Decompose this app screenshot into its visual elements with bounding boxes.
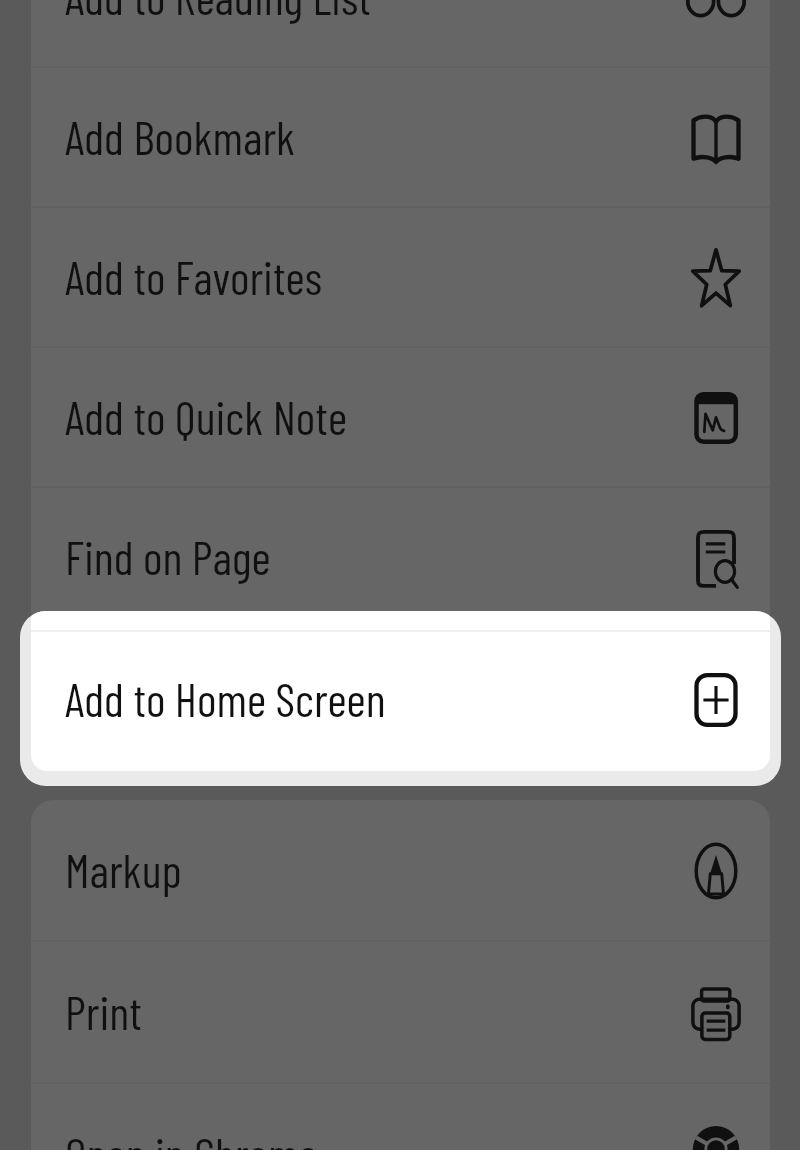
other: Add Bookmark <box>686 108 746 168</box>
staticText: Markup <box>65 841 182 897</box>
other: Add to Home Screen <box>686 668 746 728</box>
button[interactable]: Print <box>31 942 770 1084</box>
staticText: Print <box>65 983 142 1039</box>
other: Add to Quick Note <box>686 388 746 448</box>
other: Print <box>686 983 746 1043</box>
other: Find on Page <box>686 528 746 588</box>
other: Open in Chrome <box>686 1125 746 1150</box>
other: Add to Home Screen <box>686 670 746 730</box>
other: Markup <box>686 841 746 901</box>
button[interactable]: Add to Favorites <box>31 208 770 348</box>
staticText: Add to Home Screen <box>65 670 386 726</box>
button[interactable]: Open in Chrome <box>31 1084 770 1150</box>
button[interactable]: Add to Reading List <box>31 0 770 68</box>
staticText: Add to Quick Note <box>65 388 348 444</box>
button[interactable]: Find on Page <box>31 488 770 628</box>
button[interactable]: Add Bookmark <box>31 68 770 208</box>
other: Add to Reading List <box>686 0 746 28</box>
button[interactable]: Markup <box>31 800 770 942</box>
button[interactable]: Add to Home Screen <box>20 611 781 786</box>
button[interactable]: Add to Home Screen <box>31 628 770 768</box>
staticText: Find on Page <box>65 528 271 584</box>
staticText: Add to Home Screen <box>65 668 386 724</box>
staticText: Add to Favorites <box>65 248 323 304</box>
staticText: Add to Reading List <box>65 0 371 24</box>
staticText: Open in Chrome <box>65 1125 318 1150</box>
other: Add to Favorites <box>686 248 746 308</box>
staticText: Add Bookmark <box>65 108 296 164</box>
button[interactable]: Add to Quick Note <box>31 348 770 488</box>
